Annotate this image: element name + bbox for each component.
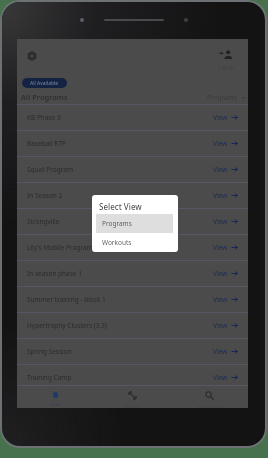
staticText: View (213, 139, 228, 148)
button[interactable]: Workout (94, 385, 171, 408)
button[interactable]: All Available (22, 78, 67, 88)
staticText: View (213, 321, 228, 330)
button[interactable]: Settings (22, 46, 42, 66)
button[interactable]: Baseball RTP (17, 131, 248, 156)
staticText: Select View (99, 201, 142, 212)
button[interactable]: Spring Session (17, 339, 248, 364)
staticText: Summer training - block 1 (27, 295, 106, 304)
staticText: View (213, 295, 228, 304)
button[interactable]: Exercise Detail (171, 385, 248, 408)
staticText: Lily's Mobile Program (27, 243, 93, 252)
staticText: All Programs (21, 92, 68, 102)
staticText: Programs (207, 93, 237, 102)
staticText: Programs (102, 219, 132, 228)
button[interactable]: Training Camp (17, 365, 248, 390)
staticText: KB Phase 3 (27, 113, 61, 122)
button[interactable]: Log in (211, 50, 241, 70)
button[interactable]: Squat Program (17, 157, 248, 182)
button[interactable]: Home (17, 385, 94, 408)
staticText: All Available (30, 80, 59, 87)
staticText: Workouts (102, 238, 132, 247)
staticText: View (213, 217, 228, 226)
staticText: View (213, 165, 228, 174)
button[interactable]: Programs (96, 214, 173, 233)
button[interactable]: Strongville (17, 209, 248, 234)
staticText: Hypertrophy Clusters (3.3) (27, 321, 107, 330)
staticText: Training Camp (27, 373, 72, 382)
button[interactable]: Workouts (92, 233, 178, 252)
button[interactable]: Hypertrophy Clusters (3.3) (17, 313, 248, 338)
button[interactable]: In Season 2 (17, 183, 248, 208)
button[interactable]: In season phase 1 (17, 261, 248, 286)
staticText: Squat Program (27, 165, 73, 174)
button[interactable]: Programs (207, 93, 245, 102)
staticText: Home (51, 402, 61, 407)
staticText: View (213, 243, 228, 252)
staticText: In season phase 1 (27, 269, 82, 278)
staticText: View (213, 373, 228, 382)
staticText: View (213, 113, 228, 122)
button[interactable]: Summer training - block 1 (17, 287, 248, 312)
button[interactable]: Lily's Mobile Program (17, 235, 248, 260)
staticText: Baseball RTP (27, 139, 66, 148)
button[interactable]: KB Phase 3 (17, 105, 248, 130)
staticText: View (213, 347, 228, 356)
staticText: Strongville (27, 217, 60, 226)
staticText: View (213, 269, 228, 278)
staticText: In Season 2 (27, 191, 63, 200)
staticText: View (213, 191, 228, 200)
staticText: Spring Session (27, 347, 72, 356)
